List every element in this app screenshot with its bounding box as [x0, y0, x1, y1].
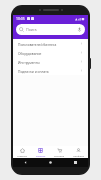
staticText: Главная: [17, 154, 27, 157]
staticText: Подписки и оплата: [18, 69, 80, 73]
other: Voice search: [77, 27, 82, 32]
button[interactable]: Подписки и оплата: [15, 66, 86, 75]
staticText: Инструменты: [18, 60, 80, 64]
button[interactable]: Home: [48, 160, 53, 165]
button[interactable]: Главная: [13, 146, 31, 158]
button[interactable]: Пользователей бизнеса: [15, 39, 86, 48]
other: Search: [19, 27, 24, 32]
staticText: Профиль: [73, 154, 85, 157]
button[interactable]: Recent apps: [73, 160, 78, 165]
button[interactable]: Оборудование: [15, 48, 86, 57]
button[interactable]: Корзина: [50, 146, 69, 158]
staticText: Пользователей бизнеса: [18, 42, 80, 46]
staticText: Корзина: [54, 154, 65, 157]
button[interactable]: Каталог: [31, 146, 50, 158]
button[interactable]: Инструменты: [15, 57, 86, 66]
staticText: Поиск: [26, 27, 37, 32]
button[interactable]: Back: [23, 160, 28, 165]
button[interactable]: Search: [16, 24, 85, 35]
button[interactable]: Профиль: [69, 146, 88, 158]
staticText: Оборудование: [18, 51, 80, 55]
staticText: 10:05: [16, 16, 25, 21]
staticText: Каталог: [36, 154, 46, 157]
